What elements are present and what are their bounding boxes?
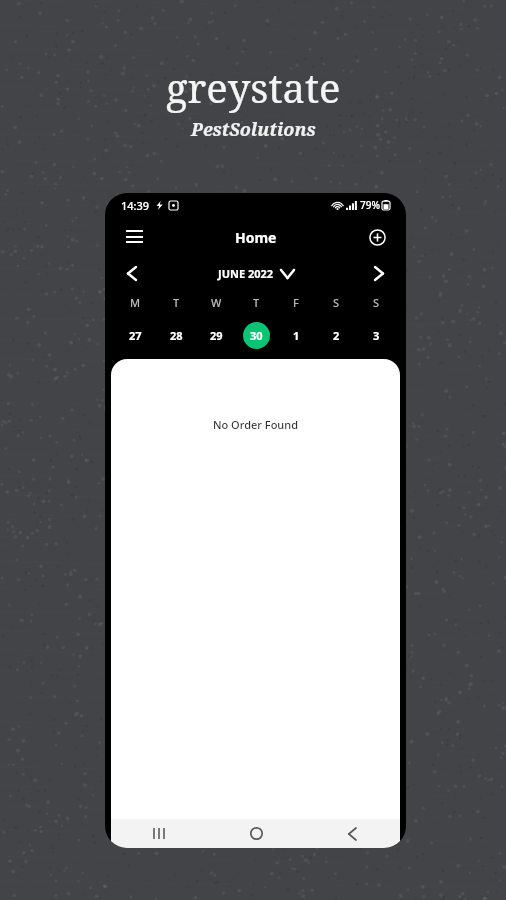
button[interactable]: 28	[156, 321, 196, 349]
staticText: greystate	[166, 60, 341, 114]
staticText: 2	[333, 328, 340, 343]
staticText: PestSolutions	[191, 117, 316, 142]
staticText: 3	[373, 328, 380, 343]
staticText: JUNE 2022	[218, 266, 274, 281]
staticText: Home	[235, 228, 277, 247]
staticText: 29	[210, 328, 223, 343]
staticText: W	[211, 295, 222, 310]
button[interactable]: Back	[304, 819, 400, 848]
button[interactable]: 29	[196, 321, 236, 349]
button[interactable]: 3	[356, 321, 396, 349]
staticText: 27	[129, 328, 142, 343]
staticText: 30	[250, 328, 263, 343]
staticText: T	[253, 295, 260, 310]
button[interactable]: 1	[276, 321, 316, 349]
button[interactable]: Previous week	[117, 258, 147, 288]
staticText: 14:39	[121, 198, 150, 213]
button[interactable]: Next week	[364, 258, 394, 288]
staticText: F	[293, 295, 299, 310]
staticText: 79%	[360, 198, 380, 212]
button[interactable]: 27	[115, 321, 156, 349]
staticText: S	[373, 295, 380, 310]
button[interactable]: 30	[236, 321, 276, 349]
button[interactable]: Menu	[117, 220, 151, 254]
staticText: No Order Found	[213, 417, 298, 432]
staticText: 28	[170, 328, 183, 343]
button[interactable]: Add order	[360, 220, 394, 254]
button[interactable]: 2	[316, 321, 356, 349]
staticText: T	[173, 295, 180, 310]
button[interactable]: Home	[208, 819, 304, 848]
button[interactable]: Recents	[111, 819, 208, 848]
staticText: S	[333, 295, 340, 310]
staticText: M	[130, 295, 141, 310]
button[interactable]: JUNE 2022	[218, 266, 294, 281]
staticText: 1	[293, 328, 300, 343]
